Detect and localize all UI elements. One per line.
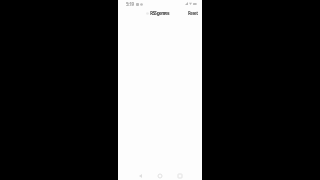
button[interactable]: RSS genres bbox=[146, 10, 169, 17]
button[interactable]: Recent apps bbox=[174, 170, 186, 180]
staticText: RSS genres bbox=[150, 10, 169, 17]
button[interactable]: Back bbox=[134, 170, 146, 180]
staticText: Reset bbox=[188, 10, 198, 16]
staticText: 5:19 bbox=[126, 1, 134, 7]
button[interactable]: Home bbox=[154, 170, 166, 180]
button[interactable]: Reset bbox=[187, 8, 199, 18]
